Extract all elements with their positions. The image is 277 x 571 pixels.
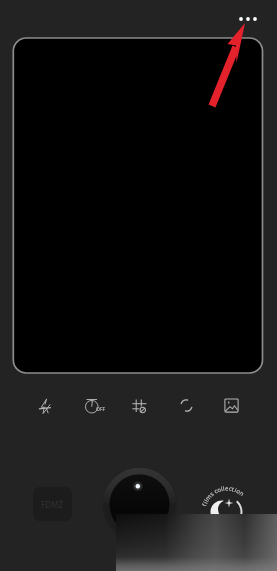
button[interactable]: Shutter bbox=[103, 461, 175, 533]
staticText: FDMZ bbox=[41, 499, 64, 510]
button[interactable]: FDMZ bbox=[33, 487, 72, 521]
button[interactable]: Flash off bbox=[32, 392, 58, 418]
staticText: OFF bbox=[96, 406, 106, 413]
button[interactable]: Grid off bbox=[126, 392, 152, 418]
button[interactable]: More options bbox=[233, 9, 263, 29]
button[interactable]: Films collection bbox=[196, 482, 252, 538]
button[interactable]: Switch camera bbox=[173, 392, 199, 418]
button[interactable]: Timer off bbox=[79, 392, 105, 418]
button[interactable]: Viewfinder bbox=[13, 38, 262, 373]
button[interactable]: Gallery bbox=[218, 392, 244, 418]
